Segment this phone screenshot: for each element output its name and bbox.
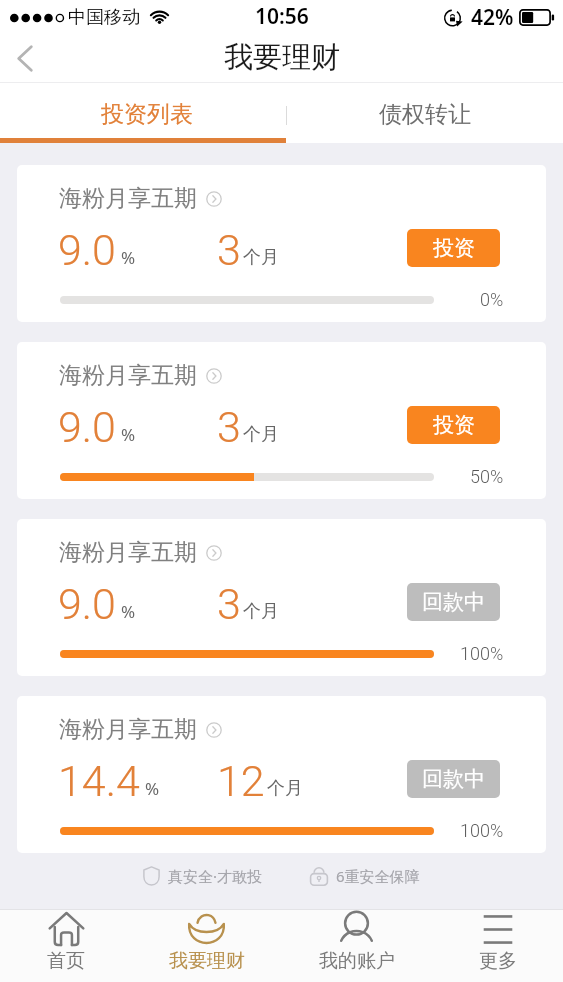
staticText: % <box>121 423 136 446</box>
staticText: 9.0 <box>58 225 116 275</box>
staticText: 0% <box>480 289 504 310</box>
staticText: 个月 <box>267 777 303 800</box>
staticText: 100% <box>460 643 504 664</box>
staticText: 100% <box>460 820 504 841</box>
staticText: % <box>145 777 160 800</box>
staticText: 我的账户 <box>319 949 395 973</box>
staticText: 3 <box>217 225 241 275</box>
button[interactable]: 海粉月享五期 <box>17 342 546 499</box>
staticText: 个月 <box>243 600 279 623</box>
button[interactable]: 海粉月享五期 <box>17 165 546 322</box>
staticText: 首页 <box>47 949 85 973</box>
staticText: 42% <box>471 3 514 32</box>
staticText: 50% <box>470 466 504 487</box>
button[interactable]: 债权转让 <box>281 83 563 143</box>
button[interactable]: 首页 <box>0 909 132 982</box>
button[interactable]: 海粉月享五期 <box>17 519 546 676</box>
button[interactable]: Back <box>0 34 49 83</box>
staticText: % <box>121 600 136 623</box>
staticText: 我要理财 <box>169 949 245 973</box>
button[interactable]: 回款中 <box>407 583 500 621</box>
button[interactable]: 投资 <box>407 406 500 444</box>
button[interactable]: 海粉月享五期 <box>17 696 546 853</box>
staticText: 9.0 <box>58 402 116 452</box>
button[interactable]: 更多 <box>432 909 563 982</box>
staticText: 3 <box>217 579 241 629</box>
staticText: 3 <box>217 402 241 452</box>
staticText: 12 <box>217 756 265 806</box>
staticText: % <box>121 246 136 269</box>
staticText: 更多 <box>479 949 517 973</box>
staticText: 真安全·才敢投 <box>168 866 263 886</box>
button[interactable]: 回款中 <box>407 760 500 798</box>
staticText: 中国移动 <box>68 6 140 29</box>
staticText: 投资 <box>433 235 475 261</box>
button[interactable]: 投资列表 <box>0 83 281 143</box>
staticText: 14.4 <box>58 756 140 806</box>
staticText: 回款中 <box>422 766 485 792</box>
staticText: 6重安全保障 <box>336 866 420 886</box>
staticText: 海粉月享五期 <box>59 361 197 390</box>
staticText: 9.0 <box>58 579 116 629</box>
staticText: 海粉月享五期 <box>59 715 197 744</box>
button[interactable]: 我要理财 <box>132 909 281 982</box>
staticText: 10:56 <box>255 2 309 31</box>
staticText: 海粉月享五期 <box>59 538 197 567</box>
button[interactable]: 我的账户 <box>281 909 432 982</box>
staticText: 海粉月享五期 <box>59 184 197 213</box>
staticText: 投资 <box>433 412 475 438</box>
staticText: 债权转让 <box>379 100 471 129</box>
button[interactable]: 投资 <box>407 229 500 267</box>
staticText: 回款中 <box>422 589 485 615</box>
staticText: 我要理财 <box>224 39 340 76</box>
staticText: 个月 <box>243 246 279 269</box>
staticText: 投资列表 <box>101 100 193 129</box>
staticText: 个月 <box>243 423 279 446</box>
